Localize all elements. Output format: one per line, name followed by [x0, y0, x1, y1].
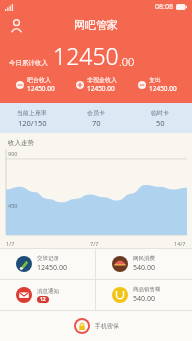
button[interactable]: 交班记录 — [0, 249, 95, 279]
staticText: 12 — [40, 296, 46, 303]
staticText: 收入走势 — [8, 139, 34, 147]
staticText: 08:08 — [155, 2, 173, 12]
staticText: 540.00 — [133, 263, 155, 273]
staticText: 手机密保 — [95, 322, 119, 330]
staticText: 450 — [8, 202, 18, 209]
button[interactable]: 网民消费 — [96, 249, 192, 279]
staticText: 900 — [8, 150, 18, 157]
button[interactable]: 商品销售额 — [96, 280, 192, 310]
staticText: 今日累计收入 — [9, 59, 48, 67]
staticText: 非现金收入 — [87, 76, 117, 84]
button[interactable]: 手机密保 — [74, 318, 119, 334]
staticText: 交班记录 — [37, 255, 59, 262]
staticText: 支出 — [149, 76, 161, 84]
staticText: 吧台收入 — [27, 76, 51, 84]
staticText: 1/7 — [6, 240, 15, 247]
staticText: 消息通知 — [37, 288, 59, 295]
staticText: 12450.00 — [37, 263, 67, 273]
staticText: 商品销售额 — [133, 286, 161, 293]
staticText: 12450.00 — [149, 84, 177, 93]
staticText: 网民消费 — [133, 255, 155, 262]
staticText: .00 — [119, 54, 135, 69]
staticText: 50 — [156, 118, 165, 128]
button[interactable]: 当前上座率 — [0, 103, 64, 133]
staticText: 临时卡 — [151, 109, 169, 117]
staticText: 540.00 — [133, 294, 155, 304]
staticText: 14/7 — [174, 240, 186, 247]
button[interactable]: 会员卡 — [64, 103, 128, 133]
staticText: 当前上座率 — [17, 109, 47, 117]
staticText: 7/7 — [90, 240, 99, 247]
button[interactable]: 消息通知 — [0, 280, 95, 310]
staticText: 12450.00 — [87, 84, 115, 93]
staticText: 会员卡 — [87, 109, 105, 117]
button[interactable]: Account — [5, 14, 27, 36]
staticText: 12450 — [53, 40, 119, 71]
button[interactable]: 非现金收入 — [66, 76, 127, 93]
button[interactable]: 临时卡 — [128, 103, 192, 133]
staticText: 12450.00 — [27, 84, 55, 93]
staticText: 120/150 — [18, 118, 47, 128]
staticText: 70 — [92, 118, 101, 128]
staticText: 网吧管家 — [74, 18, 118, 32]
button[interactable]: 吧台收入 — [4, 76, 66, 93]
button[interactable]: 支出 — [127, 76, 188, 93]
